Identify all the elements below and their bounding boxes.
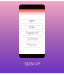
staticText: Password bbox=[26, 31, 38, 35]
button[interactable]: Name bbox=[21, 19, 43, 23]
button[interactable]: Email bbox=[21, 25, 43, 29]
button[interactable]: Phone bbox=[21, 43, 43, 47]
staticText: Email bbox=[29, 25, 35, 29]
staticText: Name bbox=[28, 19, 35, 23]
staticText: SIGN UP bbox=[24, 61, 39, 66]
staticText: Confirm bbox=[26, 37, 37, 41]
button[interactable]: Password bbox=[21, 31, 43, 35]
staticText: Phone bbox=[27, 43, 37, 47]
button[interactable]: Confirm bbox=[21, 37, 43, 41]
